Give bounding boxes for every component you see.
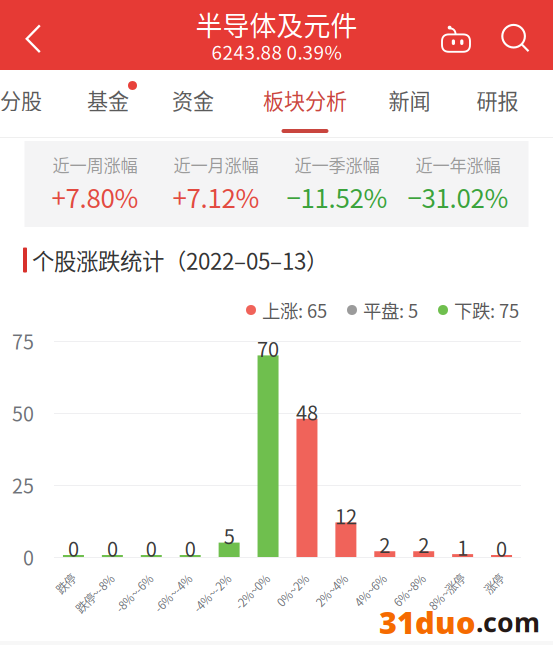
staticText: 50 bbox=[12, 399, 34, 427]
staticText: 0 bbox=[146, 533, 157, 562]
staticText: 近一月涨幅 bbox=[173, 152, 258, 177]
staticText: 跌停~-8% bbox=[63, 568, 112, 584]
button[interactable]: 基金 bbox=[72, 70, 144, 132]
staticText: 2%~4% bbox=[306, 568, 346, 584]
staticText: 上涨: 65 bbox=[262, 297, 327, 323]
button[interactable]: 新闻 bbox=[372, 70, 447, 132]
staticText: −11.52% bbox=[286, 178, 387, 215]
button[interactable]: 研报 bbox=[460, 70, 535, 132]
staticText: 新闻 bbox=[388, 85, 430, 115]
staticText: +7.12% bbox=[172, 178, 259, 215]
staticText: 半导体及元件 bbox=[195, 5, 357, 44]
staticText: 6%~8% bbox=[384, 568, 424, 584]
button[interactable]: 资金 bbox=[157, 70, 229, 132]
button[interactable]: 板块分析 bbox=[250, 70, 360, 132]
staticText: .com bbox=[476, 604, 540, 640]
staticText: 板块分析 bbox=[263, 85, 347, 115]
staticText: 近一季涨幅 bbox=[294, 152, 379, 177]
staticText: 0 bbox=[185, 533, 196, 562]
staticText: 6243.88 0.39% bbox=[211, 38, 341, 65]
staticText: -8%~-6% bbox=[103, 568, 151, 584]
button[interactable]: 成分股 bbox=[0, 70, 57, 132]
staticText: 成分股 bbox=[0, 85, 42, 115]
staticText: 2 bbox=[379, 530, 390, 559]
staticText: 12 bbox=[335, 501, 357, 530]
staticText: 平盘: 5 bbox=[363, 297, 418, 323]
staticText: 0%~2% bbox=[267, 568, 307, 584]
staticText: 5 bbox=[224, 521, 235, 550]
staticText: 1 bbox=[457, 533, 468, 562]
staticText: 25 bbox=[12, 471, 34, 499]
button[interactable]: Search bbox=[483, 0, 543, 70]
staticText: 跌停 bbox=[51, 568, 73, 584]
staticText: 0 bbox=[68, 533, 79, 562]
staticText: -6%~-4% bbox=[142, 568, 190, 584]
staticText: 涨停 bbox=[479, 568, 501, 584]
staticText: 4%~6% bbox=[345, 568, 385, 584]
button[interactable]: Back bbox=[0, 0, 62, 70]
staticText: 31duo bbox=[379, 602, 476, 642]
staticText: 个股涨跌统计（2022–05–13） bbox=[32, 244, 328, 276]
staticText: 0 bbox=[496, 533, 507, 562]
staticText: 0 bbox=[107, 533, 118, 562]
staticText: 近一周涨幅 bbox=[52, 152, 137, 177]
staticText: 基金 bbox=[87, 85, 129, 115]
staticText: 75 bbox=[12, 327, 34, 355]
staticText: 近一年涨幅 bbox=[415, 152, 500, 177]
staticText: 0 bbox=[23, 543, 34, 571]
staticText: 8%~涨停 bbox=[418, 568, 463, 584]
staticText: -4%~-2% bbox=[181, 568, 229, 584]
staticText: 下跌: 75 bbox=[454, 297, 519, 323]
staticText: 研报 bbox=[476, 85, 518, 115]
staticText: +7.80% bbox=[51, 178, 138, 215]
staticText: 70 bbox=[257, 334, 279, 363]
staticText: 48 bbox=[296, 397, 318, 426]
staticText: 2 bbox=[418, 530, 429, 559]
staticText: -2%~0% bbox=[224, 568, 268, 584]
staticText: 资金 bbox=[172, 85, 214, 115]
staticText: −31.02% bbox=[407, 178, 508, 215]
button[interactable]: AI assistant bbox=[423, 0, 483, 70]
